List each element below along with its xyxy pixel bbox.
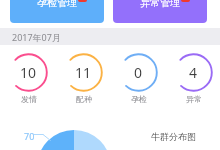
button[interactable]: 0 [111, 45, 166, 107]
staticText: 牛群分布图 [151, 131, 196, 142]
staticText: 0 [134, 63, 143, 82]
button[interactable]: 孕检管理 [10, 0, 104, 23]
staticText: 发情 [21, 94, 37, 104]
staticText: 4 [189, 63, 198, 82]
staticText: 2017年07月 [12, 31, 61, 43]
staticText: 70 [24, 130, 35, 142]
staticText: 配种 [76, 94, 92, 104]
button[interactable]: 4 [166, 45, 220, 107]
staticText: 11 [75, 63, 92, 82]
staticText: 异常 [186, 94, 202, 104]
staticText: 孕检管理 [37, 0, 77, 9]
button[interactable]: 10 [1, 45, 56, 107]
button[interactable]: 11 [56, 45, 111, 107]
button[interactable]: 2017年07月 [0, 28, 220, 45]
staticText: 10 [20, 63, 37, 82]
staticText: 异常管理 [140, 0, 180, 9]
staticText: 孕检 [131, 94, 147, 104]
button[interactable]: 异常管理 [113, 0, 207, 23]
